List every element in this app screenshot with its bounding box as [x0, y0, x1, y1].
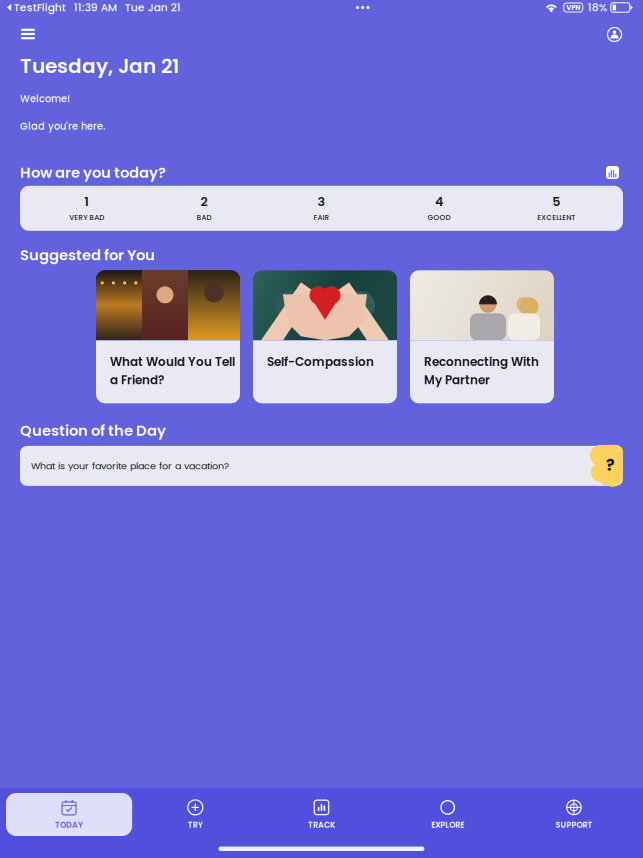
button[interactable]: Menu — [0, 15, 49, 46]
staticText: SUPPORT — [555, 819, 592, 831]
staticText: 4 — [435, 193, 443, 210]
staticText: 2 — [201, 193, 208, 210]
staticText: ? — [606, 454, 615, 476]
staticText: Welcome! — [20, 92, 70, 106]
staticText: Tue Jan 21 — [125, 0, 181, 15]
button[interactable]: TRACK — [258, 793, 385, 836]
button[interactable]: 5 — [498, 186, 615, 231]
button[interactable]: View mood history — [606, 166, 623, 179]
staticText: What Would You Tell a Friend? — [110, 353, 235, 388]
staticText: Question of the Day — [20, 420, 166, 441]
button[interactable]: What Would You Tell a Friend? — [96, 270, 240, 403]
staticText: 18% — [588, 0, 607, 15]
staticText: TRY — [188, 819, 203, 831]
staticText: EXCELLENT — [537, 212, 575, 223]
staticText: TRACK — [308, 819, 335, 831]
staticText: 3 — [317, 193, 325, 210]
staticText: VERY BAD — [69, 212, 104, 223]
staticText: TestFlight — [14, 0, 66, 15]
staticText: EXPLORE — [431, 819, 464, 831]
button[interactable]: 1 — [28, 186, 145, 231]
button[interactable]: Self-Compassion — [253, 270, 397, 403]
staticText: How are you today? — [20, 162, 166, 183]
staticText: TODAY — [55, 819, 83, 831]
button[interactable]: TRY — [132, 793, 258, 836]
staticText: Self-Compassion — [267, 353, 374, 370]
button[interactable]: What is your favorite place for a vacati… — [0, 443, 643, 489]
staticText: BAD — [197, 212, 212, 223]
staticText: 1 — [84, 193, 89, 210]
button[interactable]: SUPPORT — [511, 793, 637, 836]
button[interactable]: Profile — [593, 14, 643, 46]
button[interactable]: Reconnecting With My Partner — [410, 270, 554, 403]
staticText: GOOD — [427, 212, 450, 223]
staticText: Reconnecting With My Partner — [424, 353, 539, 388]
staticText: Glad you're here. — [20, 120, 105, 133]
button[interactable]: 3 — [263, 186, 380, 231]
staticText: 5 — [552, 193, 560, 210]
staticText: Suggested for You — [20, 245, 155, 265]
staticText: What is your favorite place for a vacati… — [31, 459, 229, 472]
button[interactable]: 2 — [145, 186, 263, 231]
staticText: FAIR — [313, 212, 329, 223]
staticText: VPN — [566, 3, 580, 12]
staticText: 11:39 AM — [74, 0, 117, 15]
button[interactable]: EXPLORE — [385, 793, 511, 836]
button[interactable]: TODAY — [6, 793, 132, 836]
button[interactable]: 4 — [380, 186, 498, 231]
staticText: Tuesday, Jan 21 — [20, 52, 179, 80]
